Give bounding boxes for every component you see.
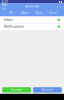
staticText: Sent xyxy=(35,11,42,15)
staticText: ◖ ▮ xyxy=(58,0,62,3)
staticText: Notifications xyxy=(4,25,24,29)
staticText: Menu xyxy=(2,3,8,10)
staticText: Accept xyxy=(11,88,22,92)
staticText: Inbox xyxy=(4,18,13,22)
button[interactable]: Decline xyxy=(33,87,62,93)
button[interactable]: Notifications xyxy=(0,23,64,30)
button[interactable]: Accept xyxy=(2,87,31,93)
button[interactable]: Open xyxy=(18,9,32,16)
button[interactable]: Menu xyxy=(1,4,8,8)
button[interactable]: Inbox xyxy=(0,16,64,23)
staticText: Done xyxy=(49,11,57,15)
button[interactable]: • • xyxy=(55,4,62,8)
button[interactable]: Done xyxy=(46,9,60,16)
staticText: Decline xyxy=(41,88,53,92)
button[interactable]: All xyxy=(4,9,18,16)
staticText: 9:41 xyxy=(1,0,7,4)
staticText: Open xyxy=(21,11,29,15)
staticText: All xyxy=(9,11,13,15)
staticText: Overview xyxy=(24,5,39,8)
staticText: • • xyxy=(56,5,61,8)
button[interactable]: Sent xyxy=(32,9,46,16)
